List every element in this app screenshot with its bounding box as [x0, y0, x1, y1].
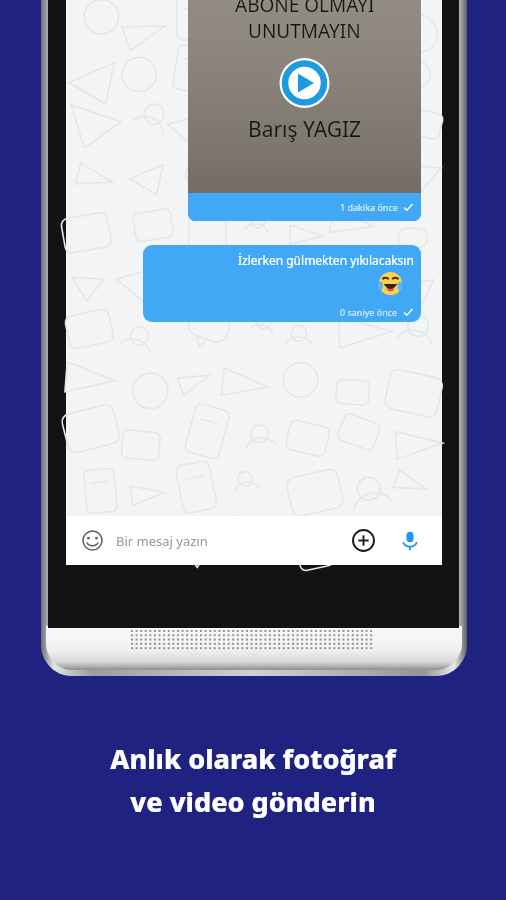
button[interactable]: Attach: [352, 529, 375, 552]
staticText: ABONE OLMAYI: [235, 0, 375, 18]
button[interactable]: Emoji: [82, 530, 103, 551]
staticText: 0 saniye önce: [340, 306, 398, 318]
button[interactable]: Emoji: [66, 516, 442, 565]
staticText: ve video gönderin: [130, 783, 376, 820]
staticText: Anlık olarak fotoğraf: [110, 740, 396, 777]
button[interactable]: ABONE OLMAYI: [188, 0, 421, 221]
staticText: İzlerken gülmekten yıkılacaksın: [238, 252, 414, 268]
staticText: UNUTMAYIN: [248, 18, 361, 44]
button[interactable]: İzlerken gülmekten yıkılacaksın: [143, 245, 421, 322]
staticText: 1 dakika önce: [340, 201, 398, 213]
staticText: Barış YAGIZ: [248, 115, 362, 144]
staticText: Bir mesaj yazın: [116, 532, 208, 550]
button[interactable]: Voice message: [399, 530, 421, 552]
